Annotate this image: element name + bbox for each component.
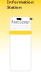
staticText: Information Station <box>7 0 34 10</box>
button[interactable] <box>7 31 34 35</box>
staticText: Print Center <box>11 21 29 24</box>
